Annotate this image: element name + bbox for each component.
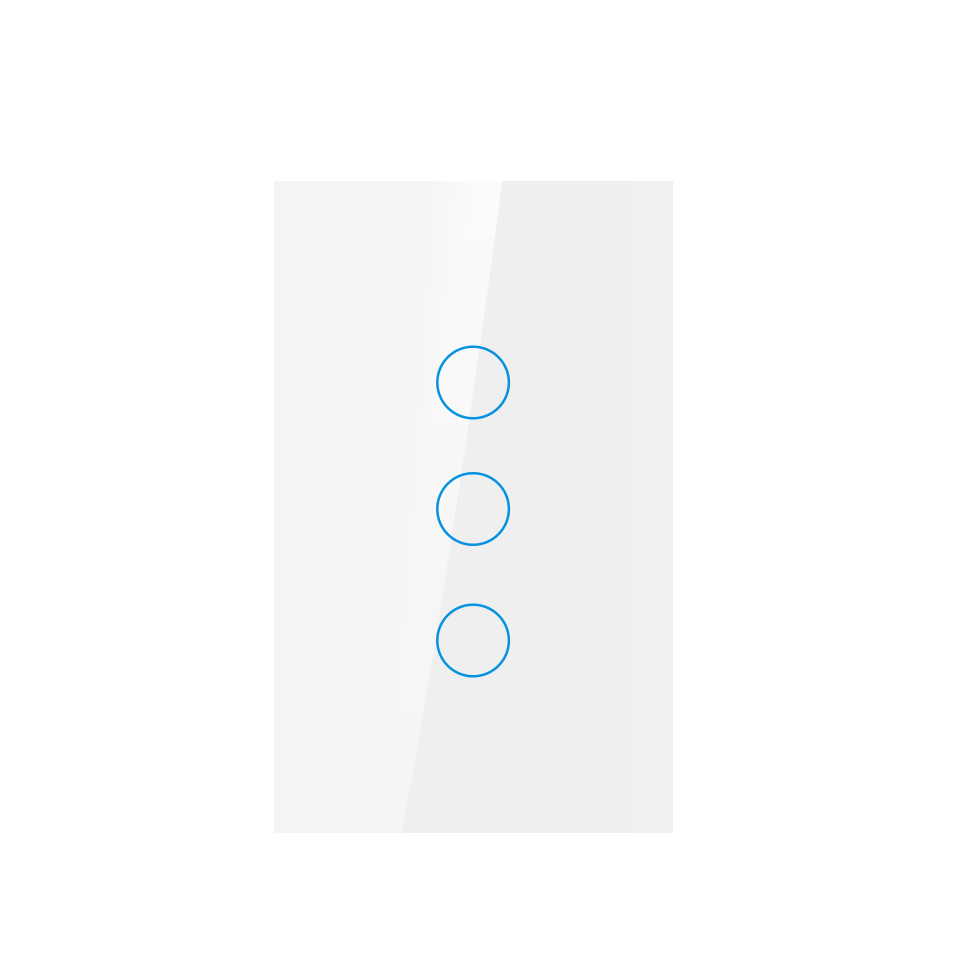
button[interactable]: Switch 3 (437, 605, 509, 676)
button[interactable]: Switch 2 (437, 473, 509, 545)
button[interactable]: Switch 1 (437, 347, 509, 418)
